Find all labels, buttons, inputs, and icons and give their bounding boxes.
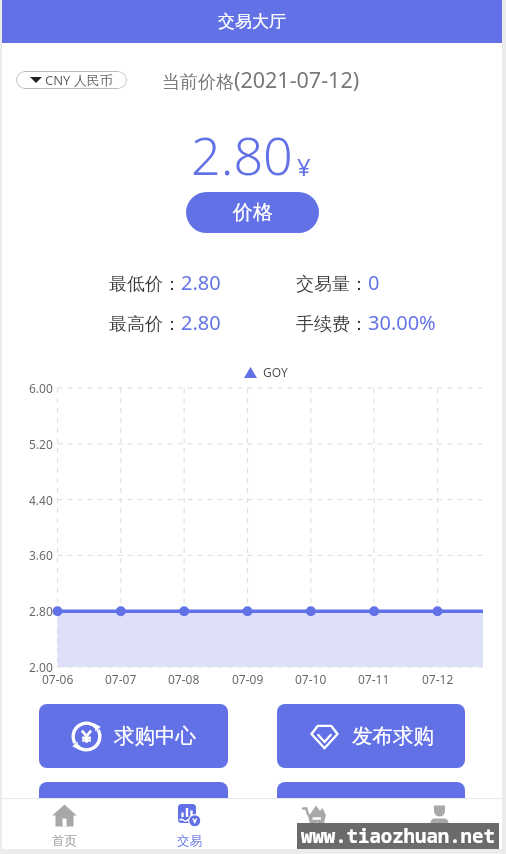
- button[interactable]: 发布出售: [277, 782, 465, 846]
- button[interactable]: 商城: [252, 799, 377, 849]
- staticText: 我的: [427, 833, 452, 849]
- staticText: CNY 人民币: [45, 71, 113, 89]
- staticText: 07-09: [232, 671, 264, 687]
- staticText: 求购中心: [114, 723, 196, 749]
- staticText: (2021-07-12): [234, 65, 360, 94]
- staticText: 07-07: [105, 671, 137, 687]
- staticText: 交易大厅: [218, 11, 286, 32]
- staticText: 价格: [233, 200, 273, 225]
- staticText: 07-06: [42, 671, 74, 687]
- staticText: 最低价：: [109, 273, 181, 296]
- staticText: 30.00%: [368, 309, 436, 336]
- staticText: 07-10: [295, 671, 327, 687]
- staticText: 交易: [177, 833, 202, 849]
- staticText: ¥: [297, 150, 311, 183]
- button[interactable]: 我的: [377, 799, 502, 849]
- button[interactable]: 求购中心: [39, 704, 228, 768]
- button[interactable]: 交易大厅: [2, 0, 502, 43]
- staticText: 0: [368, 269, 380, 296]
- staticText: 首页: [52, 833, 77, 849]
- button[interactable]: 首页: [2, 799, 127, 849]
- staticText: 07-11: [358, 671, 390, 687]
- button[interactable]: 价格: [186, 192, 319, 233]
- staticText: 手续费：: [296, 313, 368, 336]
- staticText: 4.40: [29, 492, 53, 508]
- staticText: 商城: [302, 833, 327, 849]
- staticText: www.tiaozhuan.net: [301, 823, 495, 849]
- staticText: 出售中心: [114, 801, 196, 827]
- staticText: 2.00: [29, 659, 53, 675]
- button[interactable]: CNY 人民币: [16, 71, 127, 89]
- staticText: 3.60: [29, 547, 53, 563]
- staticText: 2.80: [191, 119, 293, 190]
- staticText: 最高价：: [109, 313, 181, 336]
- staticText: 2.80: [181, 269, 221, 296]
- staticText: GOY: [263, 364, 288, 380]
- button[interactable]: 出售中心: [39, 782, 228, 846]
- staticText: 当前价格: [162, 71, 234, 94]
- staticText: 发布出售: [352, 801, 434, 827]
- staticText: 发布求购: [352, 723, 434, 749]
- button[interactable]: 交易: [127, 799, 252, 849]
- staticText: 6.00: [29, 380, 53, 396]
- staticText: 5.20: [29, 436, 53, 452]
- staticText: 交易量：: [296, 273, 368, 296]
- button[interactable]: 发布求购: [277, 704, 465, 768]
- staticText: 07-08: [168, 671, 200, 687]
- staticText: 2.80: [29, 603, 53, 619]
- staticText: 07-12: [422, 671, 454, 687]
- staticText: 2.80: [181, 309, 221, 336]
